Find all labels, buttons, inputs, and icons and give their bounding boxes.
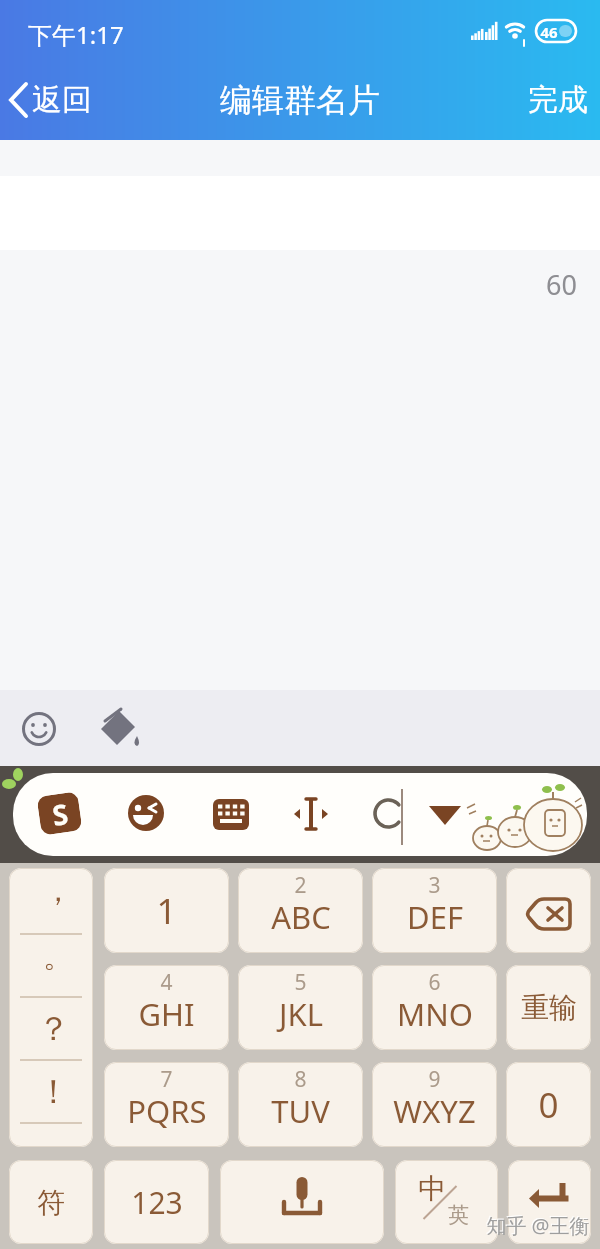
button[interactable]	[508, 1160, 591, 1244]
staticText: 2	[294, 871, 307, 900]
staticText: ，	[43, 872, 73, 910]
button[interactable]: 3	[372, 868, 497, 953]
staticText: WXYZ	[393, 1090, 476, 1132]
staticText: 下午1:17	[28, 18, 124, 51]
staticText: 7	[160, 1065, 173, 1094]
staticText: 返回	[32, 81, 92, 119]
staticText: 60	[546, 266, 577, 303]
staticText: 1	[156, 887, 177, 935]
staticText: S	[49, 794, 71, 834]
staticText: 3	[428, 871, 441, 900]
button[interactable]: 6	[372, 965, 497, 1050]
button[interactable]: 7	[104, 1062, 229, 1147]
button[interactable]: 9	[372, 1062, 497, 1147]
button[interactable]: ，	[9, 868, 93, 1147]
staticText: 46	[540, 22, 558, 42]
staticText: JKL	[279, 993, 323, 1035]
button[interactable]	[506, 868, 591, 953]
button[interactable]	[220, 1160, 384, 1244]
button[interactable]: 中	[395, 1160, 498, 1244]
button[interactable]: 4	[104, 965, 229, 1050]
staticText: 9	[428, 1065, 441, 1094]
button[interactable]: 123	[104, 1160, 209, 1244]
staticText: 5	[294, 968, 307, 997]
button[interactable]: S	[36, 791, 82, 836]
staticText: ABC	[271, 896, 331, 938]
staticText: 重输	[521, 990, 577, 1025]
button[interactable]	[291, 797, 331, 832]
staticText: 知乎 @王衡	[485, 1211, 589, 1238]
staticText: 4	[160, 968, 173, 997]
button[interactable]	[213, 799, 249, 830]
button[interactable]: 2	[238, 868, 363, 953]
staticText: 8	[294, 1065, 307, 1094]
staticText: ？	[37, 1008, 70, 1050]
staticText: 中	[418, 1171, 446, 1206]
button[interactable]: 1	[104, 868, 229, 953]
button[interactable]: 5	[238, 965, 363, 1050]
staticText: 英	[448, 1202, 469, 1228]
staticText: 0	[538, 1081, 559, 1129]
staticText: 知乎 @王衡	[486, 1212, 590, 1239]
staticText: MNO	[397, 993, 473, 1035]
staticText: GHI	[138, 993, 195, 1035]
staticText: 6	[428, 968, 441, 997]
button[interactable]	[16, 706, 64, 754]
button[interactable]: 返回	[4, 74, 94, 126]
staticText: PQRS	[127, 1090, 207, 1132]
staticText: DEF	[407, 896, 463, 938]
staticText: ！	[37, 1071, 70, 1113]
button[interactable]: 完成	[516, 74, 600, 126]
staticText: 编辑群名片	[220, 80, 380, 120]
button[interactable]	[427, 804, 463, 828]
button[interactable]: 0	[506, 1062, 591, 1147]
staticText: 123	[131, 1182, 183, 1223]
staticText: 。	[43, 938, 73, 976]
staticText: 完成	[528, 81, 588, 119]
button[interactable]	[127, 794, 165, 832]
staticText: TUV	[271, 1090, 330, 1132]
button[interactable]: 重输	[506, 965, 591, 1050]
button[interactable]: 8	[238, 1062, 363, 1147]
staticText: 符	[37, 1185, 65, 1220]
button[interactable]	[96, 702, 144, 750]
button[interactable]: 符	[9, 1160, 93, 1244]
